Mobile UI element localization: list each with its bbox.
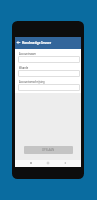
button[interactable]: Back	[16, 39, 21, 47]
staticText: Accountnaam	[19, 52, 36, 55]
staticText: OPSLAAN	[42, 148, 55, 152]
button[interactable]: Home	[45, 160, 51, 166]
staticText: Handmatige Invoer	[22, 41, 52, 45]
staticText: Waarde	[19, 66, 29, 69]
button[interactable]: Back	[62, 160, 68, 166]
button[interactable]: Recent apps	[28, 160, 34, 166]
button[interactable]: OPSLAAN	[24, 146, 73, 154]
staticText: Accountomschrijving	[19, 80, 45, 83]
button[interactable]	[18, 70, 80, 77]
button[interactable]	[18, 56, 80, 63]
button[interactable]	[18, 84, 80, 91]
